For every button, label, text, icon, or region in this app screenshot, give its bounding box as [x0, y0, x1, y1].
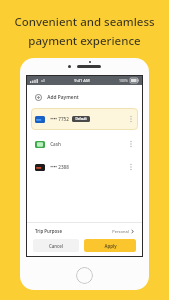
staticText: Personal: [112, 229, 129, 234]
button[interactable]: Cash: [27, 133, 142, 155]
staticText: •••• 7752: [50, 116, 69, 122]
staticText: Add Payment: [47, 94, 79, 101]
staticText: Cash: [50, 141, 61, 147]
staticText: ull: [41, 78, 45, 83]
staticText: Apply: [104, 243, 117, 249]
button[interactable]: •••• 7752: [31, 108, 138, 130]
staticText: Cancel: [49, 243, 63, 249]
staticText: 9:41 AM: [74, 78, 90, 83]
staticText: Trip Purpose: [35, 228, 62, 234]
staticText: 100%: [119, 78, 128, 83]
button[interactable]: More options: [128, 161, 134, 173]
button[interactable]: More options: [128, 113, 134, 125]
button[interactable]: Add Payment: [27, 91, 142, 104]
button[interactable]: Cancel: [33, 239, 79, 252]
button[interactable]: Home: [76, 267, 93, 284]
button[interactable]: Apply: [84, 239, 136, 252]
button[interactable]: More options: [128, 138, 134, 150]
button[interactable]: Trip Purpose: [27, 223, 142, 239]
staticText: payment experience: [28, 33, 141, 49]
staticText: Convenient and seamless: [14, 14, 155, 30]
staticText: •••• 2388: [50, 164, 69, 170]
staticText: Default: [75, 117, 87, 121]
button[interactable]: •••• 2388: [27, 156, 142, 178]
